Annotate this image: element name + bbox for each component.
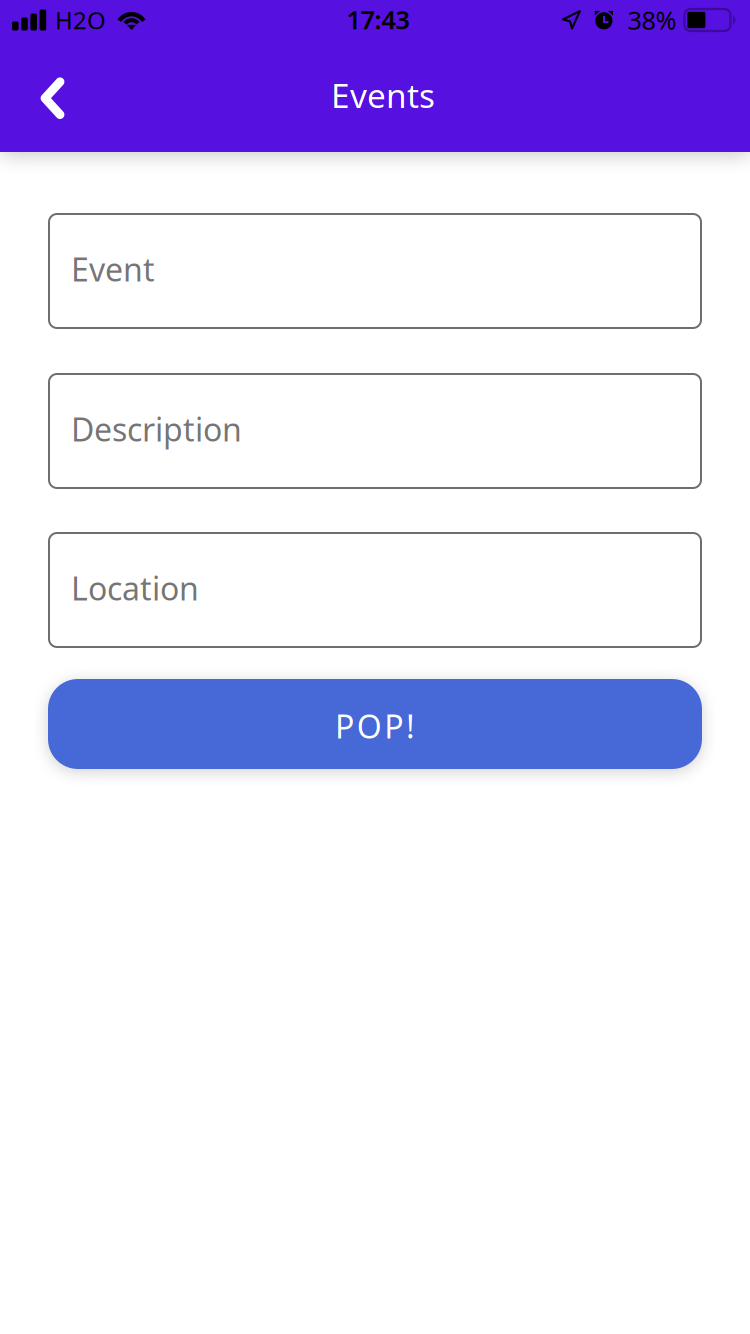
button[interactable]: POP! bbox=[48, 679, 702, 769]
staticText: Location bbox=[71, 567, 199, 609]
button[interactable]: Description bbox=[49, 374, 701, 488]
staticText: 38% bbox=[627, 3, 676, 37]
button[interactable]: Back bbox=[0, 55, 92, 141]
staticText: Description bbox=[71, 408, 242, 450]
staticText: 17:43 bbox=[346, 3, 409, 36]
staticText: H2O bbox=[55, 4, 106, 36]
staticText: Events bbox=[331, 73, 435, 117]
staticText: POP! bbox=[335, 705, 415, 747]
button[interactable]: Location bbox=[49, 533, 701, 647]
button[interactable]: Event bbox=[49, 214, 701, 328]
staticText: Event bbox=[71, 248, 155, 290]
